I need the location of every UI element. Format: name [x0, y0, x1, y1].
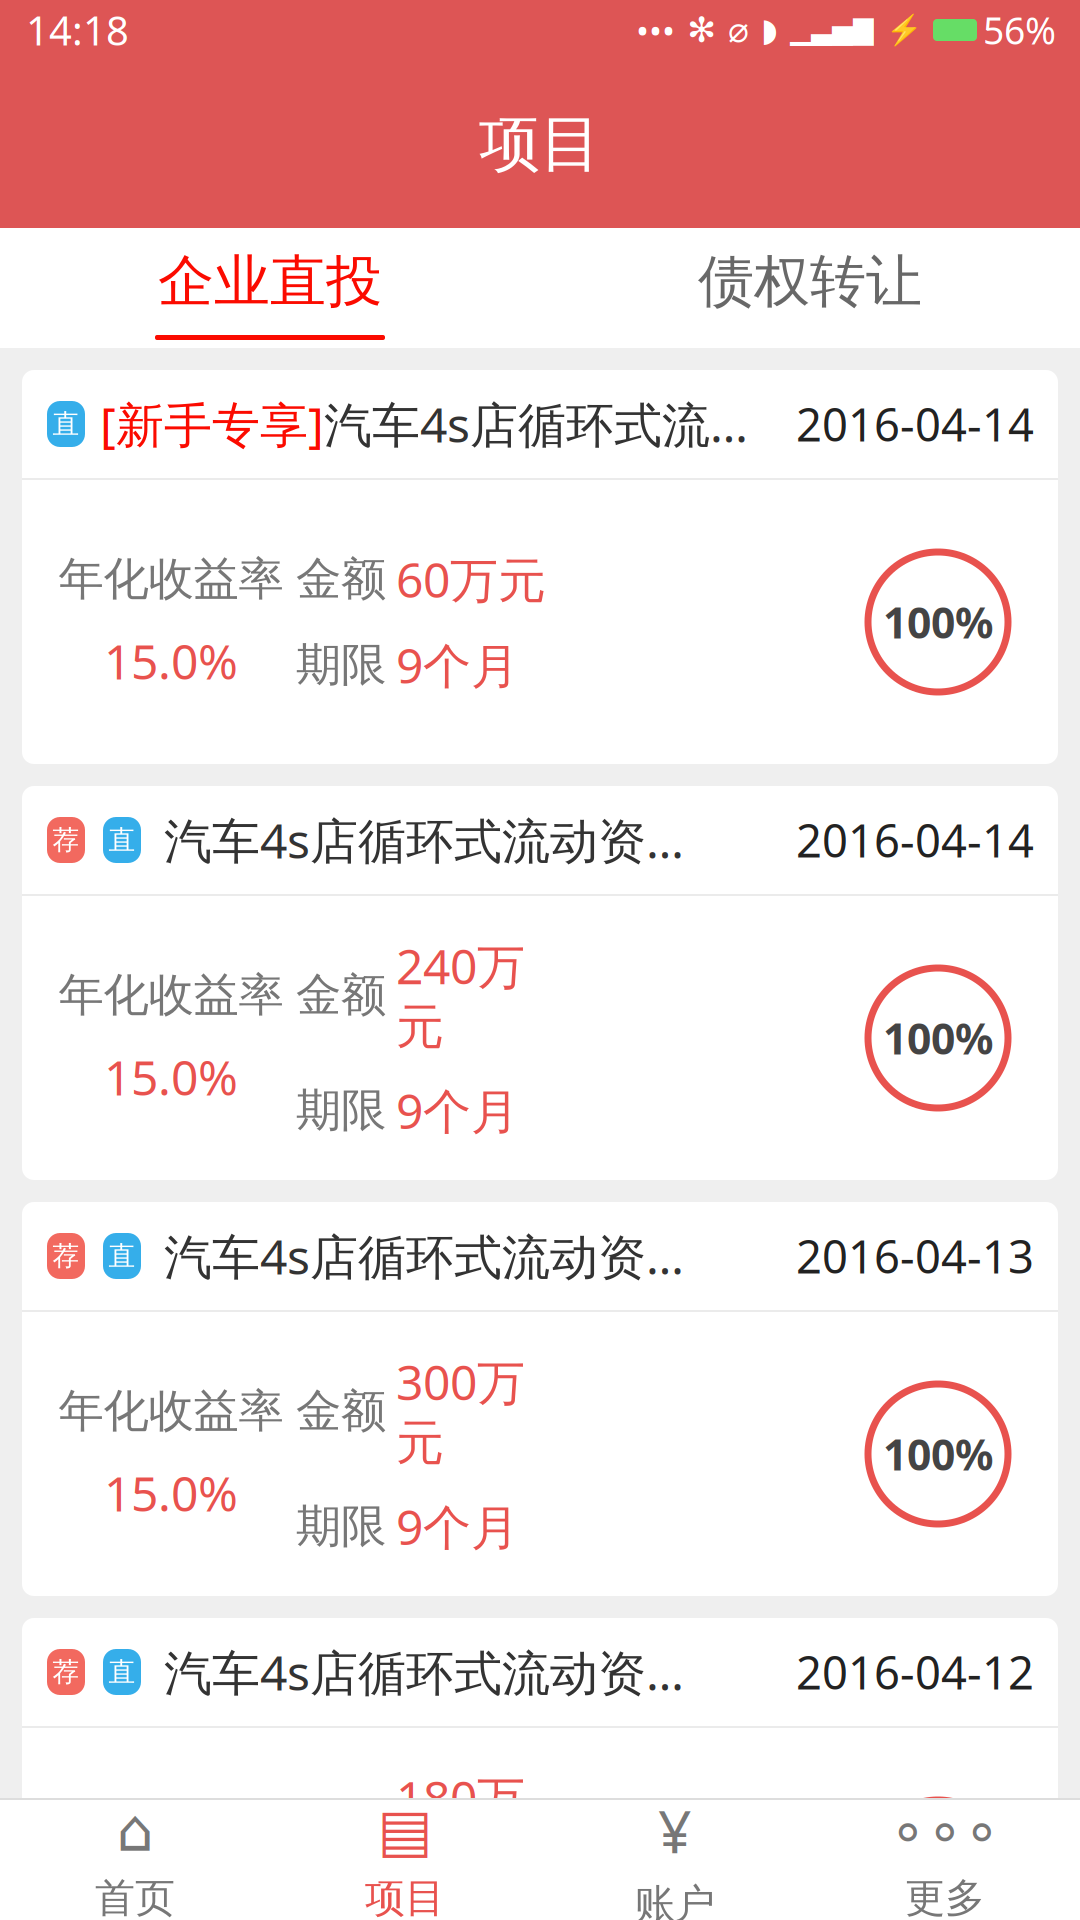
button[interactable]: 荐 — [22, 1618, 1058, 1920]
staticText: 300万元 — [396, 1350, 525, 1472]
staticText: 2016-04-12 — [796, 1642, 1034, 1702]
staticText: 更多 — [905, 1874, 985, 1920]
staticText: 2016-04-14 — [796, 394, 1034, 454]
staticText: 100% — [883, 1010, 993, 1066]
staticText: ⌀ — [728, 10, 749, 50]
staticText: 荐 — [52, 1656, 79, 1688]
staticText: 金额 — [296, 551, 386, 607]
staticText: 企业直投 — [158, 247, 382, 316]
staticText: 期限 — [296, 1498, 386, 1554]
button[interactable]: ⌂ — [0, 1800, 270, 1920]
staticText: ••• — [636, 7, 675, 53]
staticText: 15.0% — [104, 1045, 238, 1109]
staticText: 100% — [883, 1842, 993, 1898]
staticText: 荐 — [52, 1240, 79, 1272]
staticText: 年化收益率 — [58, 1799, 283, 1855]
staticText: 2016-04-14 — [796, 810, 1034, 870]
staticText: ◗ — [761, 12, 778, 48]
staticText: 汽车4s店循环式流… — [324, 392, 748, 456]
staticText: 9个月 — [396, 1910, 519, 1920]
staticText: 金额 — [296, 1799, 386, 1855]
staticText: ⚡ — [886, 13, 923, 47]
staticText: ⌂ — [116, 1797, 153, 1864]
staticText: 汽车4s店循环式流动资… — [164, 1224, 684, 1288]
button[interactable]: 债权转让 — [540, 228, 1080, 348]
staticText: 15.0% — [104, 629, 238, 693]
staticText: 荐 — [52, 824, 79, 856]
staticText: 9个月 — [396, 1494, 519, 1558]
staticText: 14:18 — [26, 3, 129, 56]
staticText: [新手专享] — [100, 392, 324, 456]
staticText: 债权转让 — [698, 247, 922, 316]
staticText: ¥ — [658, 1791, 692, 1869]
button[interactable]: 荐 — [22, 1202, 1058, 1596]
staticText: 期限 — [296, 1082, 386, 1138]
staticText: 60万元 — [396, 547, 546, 611]
staticText: 2016-04-13 — [796, 1226, 1034, 1286]
staticText: 金额 — [296, 1383, 386, 1439]
staticText: 期限 — [296, 1914, 386, 1920]
staticText: 直 — [108, 824, 135, 856]
staticText: 年化收益率 — [58, 967, 283, 1023]
staticText: 年化收益率 — [58, 1383, 283, 1439]
staticText: 直 — [108, 1656, 135, 1688]
button[interactable]: 企业直投 — [0, 228, 540, 348]
staticText: 金额 — [296, 967, 386, 1023]
staticText: 240万元 — [396, 934, 525, 1056]
staticText: 100% — [883, 1426, 993, 1482]
button[interactable]: ¥ — [540, 1800, 810, 1920]
staticText: 100% — [883, 594, 993, 650]
staticText: 180万元 — [396, 1766, 525, 1888]
staticText: 汽车4s店循环式流动资… — [164, 808, 684, 872]
staticText: 期限 — [296, 637, 386, 693]
staticText: ∘∘∘ — [889, 1797, 1000, 1864]
staticText: 汽车4s店循环式流动资… — [164, 1640, 684, 1704]
staticText: 首页 — [95, 1874, 175, 1920]
button[interactable]: ∘∘∘ — [810, 1800, 1080, 1920]
staticText: 9个月 — [396, 1078, 519, 1142]
staticText: 15.0% — [104, 1461, 238, 1525]
staticText: ▁▃▅▇ — [790, 15, 874, 45]
staticText: 账户 — [635, 1879, 715, 1920]
staticText: 项目 — [365, 1874, 445, 1920]
button[interactable]: 直 — [22, 370, 1058, 764]
button[interactable]: 荐 — [22, 786, 1058, 1180]
staticText: 年化收益率 — [58, 551, 283, 607]
staticText: 直 — [108, 1240, 135, 1272]
staticText: 项目 — [479, 106, 601, 182]
staticText: ▤ — [377, 1797, 432, 1864]
button[interactable]: ▤ — [270, 1800, 540, 1920]
staticText: ✻ — [687, 10, 716, 50]
staticText: 9个月 — [396, 633, 519, 697]
staticText: 直 — [52, 408, 79, 440]
staticText: 56% — [983, 5, 1056, 55]
staticText: 15.0% — [104, 1877, 238, 1920]
